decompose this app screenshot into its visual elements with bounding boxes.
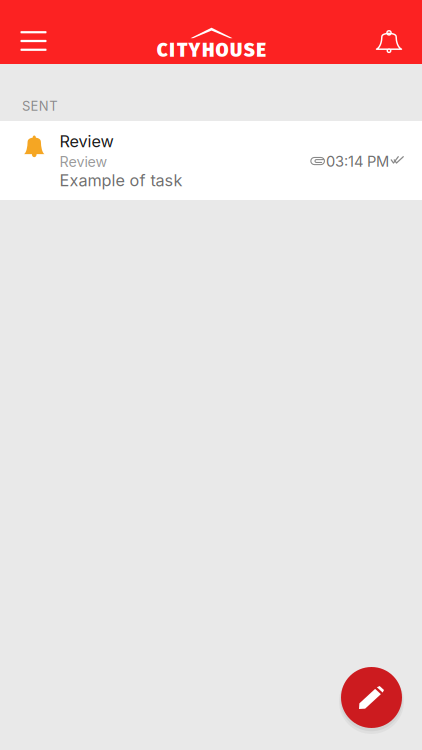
staticText: Example of task [59, 170, 182, 190]
staticText: 03:14 PM [326, 152, 389, 170]
button[interactable]: Compose [338, 664, 404, 731]
button[interactable]: Review [0, 121, 422, 200]
button[interactable]: Notifications [361, 9, 417, 73]
staticText: Review [59, 131, 113, 151]
staticText: Review [59, 153, 107, 170]
button[interactable]: Menu [4, 9, 62, 73]
staticText: SENT [22, 98, 57, 114]
staticText: CITYHOUSE [157, 39, 266, 62]
